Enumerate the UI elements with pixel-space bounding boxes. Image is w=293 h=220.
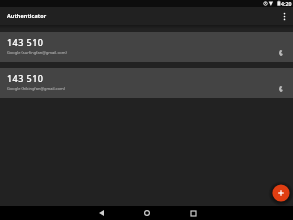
staticText: 4:20 bbox=[281, 0, 292, 7]
staticText: 143 510 bbox=[7, 72, 44, 84]
button[interactable]: Add account bbox=[271, 183, 291, 203]
button[interactable]: Recent apps bbox=[170, 206, 216, 220]
button[interactable]: 143 510 bbox=[0, 32, 293, 62]
button[interactable]: Home bbox=[124, 206, 170, 220]
button[interactable]: Back bbox=[78, 206, 124, 220]
button[interactable]: More options bbox=[275, 7, 293, 25]
staticText: Google (hikingfan@gmail.com) bbox=[7, 86, 65, 91]
staticText: 143 510 bbox=[7, 36, 44, 48]
button[interactable]: 143 510 bbox=[0, 68, 293, 98]
staticText: Google (surfingfan@gmail.com) bbox=[7, 50, 67, 55]
staticText: Authenticator bbox=[7, 12, 47, 19]
